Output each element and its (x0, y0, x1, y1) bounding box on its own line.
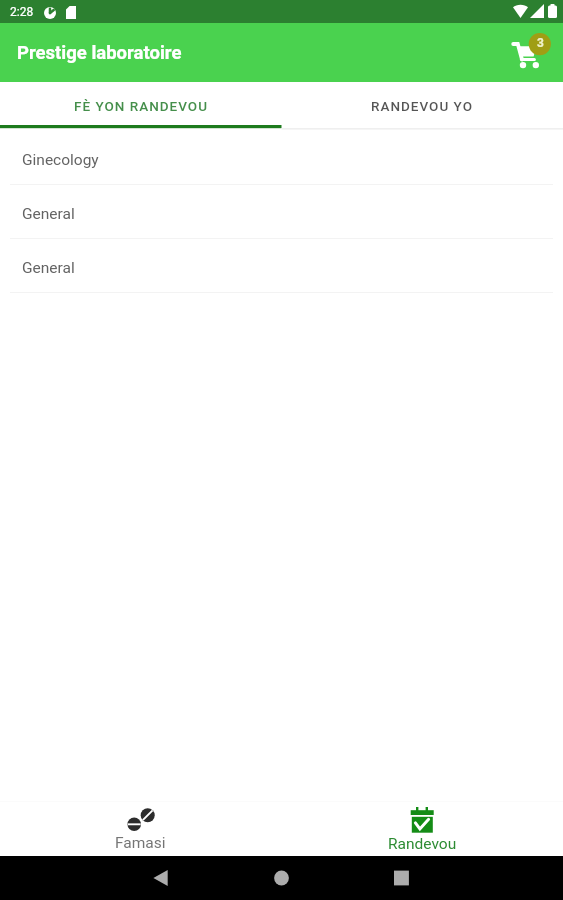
button[interactable]: Shopping cart (497, 29, 545, 77)
staticText: 3 (537, 36, 544, 50)
staticText: Prestige laboratoire (17, 42, 182, 64)
staticText: Famasi (115, 834, 166, 852)
staticText: 2:28 (10, 5, 34, 19)
staticText: General (22, 205, 75, 223)
button[interactable]: Randevou (281, 802, 563, 856)
button[interactable]: Ginecology (0, 131, 563, 185)
staticText: RANDEVOU YO (371, 98, 473, 114)
staticText: General (22, 259, 75, 277)
button[interactable]: RANDEVOU YO (281, 82, 563, 125)
button[interactable]: General (0, 239, 563, 293)
button[interactable]: FÈ YON RANDEVOU (0, 82, 281, 125)
staticText: Randevou (388, 835, 457, 853)
staticText: FÈ YON RANDEVOU (74, 98, 208, 114)
button[interactable]: Famasi (0, 802, 281, 856)
staticText: Ginecology (22, 151, 99, 169)
button[interactable]: General (0, 185, 563, 239)
